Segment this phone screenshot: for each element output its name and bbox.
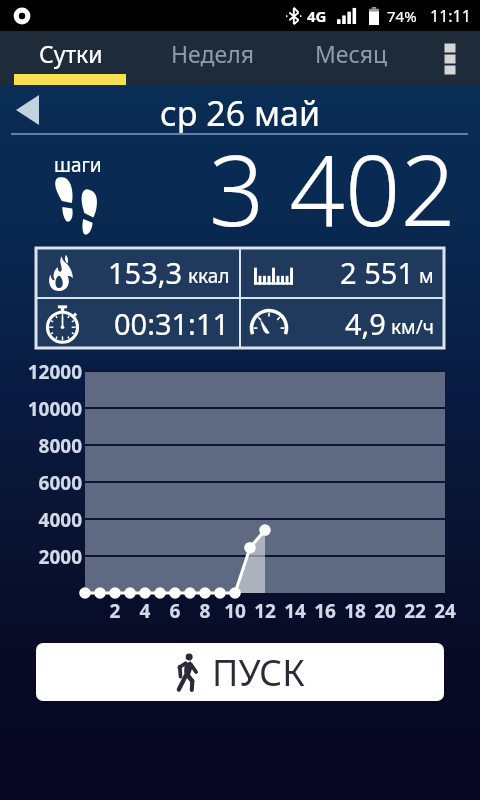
staticText: 2 551 [340, 253, 414, 292]
staticText: 2000 [0, 544, 82, 570]
button[interactable]: 4,9 [240, 299, 444, 348]
staticText: 8000 [0, 433, 82, 459]
button[interactable]: 2 551 [240, 248, 444, 297]
staticText: ккал [188, 263, 230, 289]
staticText: 24 [425, 598, 465, 624]
staticText: м [419, 263, 434, 289]
staticText: Неделя [171, 38, 254, 69]
button[interactable]: Месяц [280, 31, 420, 86]
staticText: 4 [125, 598, 165, 624]
staticText: 8 [185, 598, 225, 624]
button[interactable]: More options [420, 31, 480, 86]
staticText: 2 [95, 598, 135, 624]
staticText: 4G [307, 6, 327, 26]
staticText: 74% [387, 6, 417, 26]
button[interactable]: 153,3 [36, 248, 240, 297]
staticText: 14 [275, 598, 315, 624]
staticText: ПУСК [212, 648, 305, 697]
button[interactable]: ПУСК [36, 643, 444, 701]
button[interactable]: Неделя [140, 31, 280, 86]
staticText: 10000 [0, 396, 82, 422]
staticText: 10 [215, 598, 255, 624]
staticText: 12 [245, 598, 285, 624]
staticText: 6000 [0, 470, 82, 496]
staticText: Месяц [315, 38, 387, 69]
staticText: 3 402 [209, 122, 456, 233]
staticText: 4,9 [345, 304, 386, 343]
staticText: 153,3 [108, 253, 183, 292]
staticText: км/ч [391, 314, 434, 340]
staticText: 00:31:11 [114, 304, 230, 343]
staticText: 12000 [0, 359, 82, 385]
staticText: ср 26 май [160, 90, 321, 136]
staticText: 4000 [0, 507, 82, 533]
staticText: 16 [305, 598, 345, 624]
staticText: 11:11 [430, 5, 471, 27]
button[interactable]: Previous day [0, 86, 72, 134]
staticText: 18 [335, 598, 375, 624]
button[interactable]: 00:31:11 [36, 299, 240, 348]
staticText: шаги [54, 152, 102, 178]
staticText: 22 [395, 598, 435, 624]
button[interactable]: Сутки [0, 31, 140, 86]
staticText: Сутки [39, 38, 103, 69]
staticText: 20 [365, 598, 405, 624]
staticText: 6 [155, 598, 195, 624]
